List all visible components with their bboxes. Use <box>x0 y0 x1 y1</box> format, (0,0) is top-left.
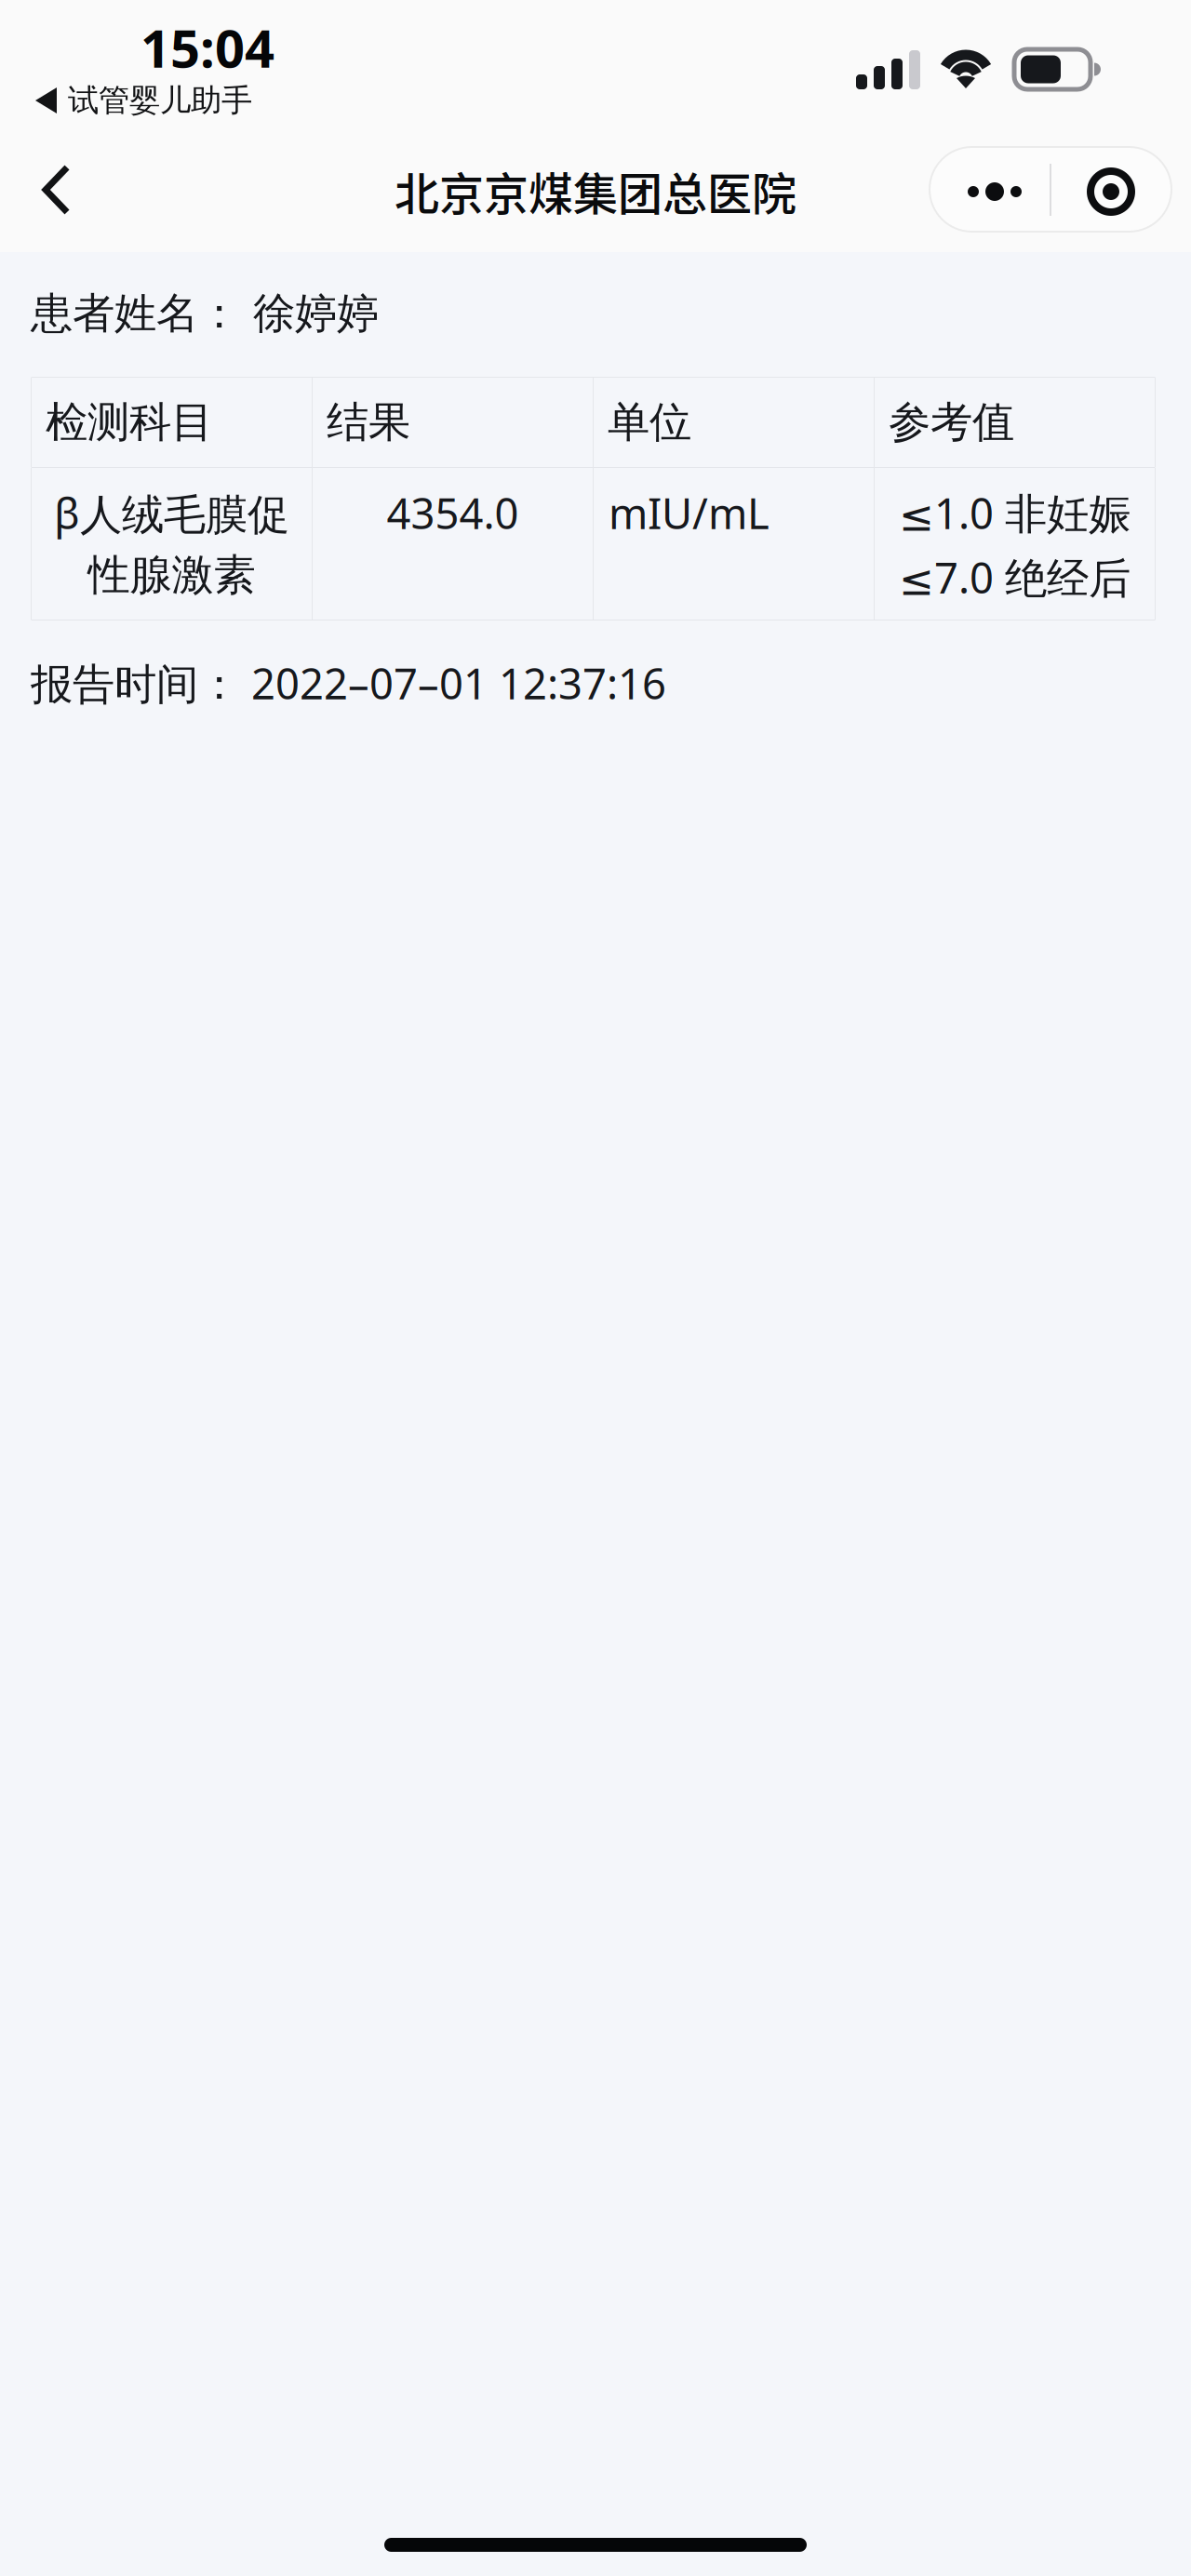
staticText: 结果 <box>327 396 410 448</box>
button[interactable]: Back <box>0 143 149 236</box>
staticText: 单位 <box>608 396 691 448</box>
staticText: 患者姓名： 徐婷婷 <box>31 287 379 339</box>
staticText: β人绒毛膜促 <box>54 485 289 541</box>
staticText: 参考值 <box>889 396 1014 448</box>
button[interactable]: Close mini program <box>1050 146 1172 233</box>
button[interactable]: More options <box>929 146 1050 233</box>
staticText: 北京京煤集团总医院 <box>395 158 796 223</box>
staticText: 检测科目 <box>46 396 213 448</box>
staticText: 15:04 <box>141 13 274 82</box>
staticText: 4354.0 <box>387 485 519 541</box>
staticText: 报告时间： 2022–07–01 12:37:16 <box>31 655 666 711</box>
staticText: 试管婴儿助手 <box>68 81 252 119</box>
staticText: ≤1.0 非妊娠 <box>899 485 1131 541</box>
staticText: 性腺激素 <box>88 549 255 601</box>
staticText: mIU/mL <box>609 485 769 541</box>
button[interactable]: 试管婴儿助手 <box>35 84 408 117</box>
staticText: ≤7.0 绝经后 <box>899 549 1131 605</box>
